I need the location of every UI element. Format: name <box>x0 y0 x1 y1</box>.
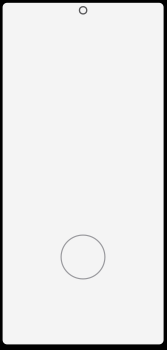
button[interactable]: Lens <box>79 6 87 15</box>
button[interactable]: Shutter <box>60 234 105 279</box>
